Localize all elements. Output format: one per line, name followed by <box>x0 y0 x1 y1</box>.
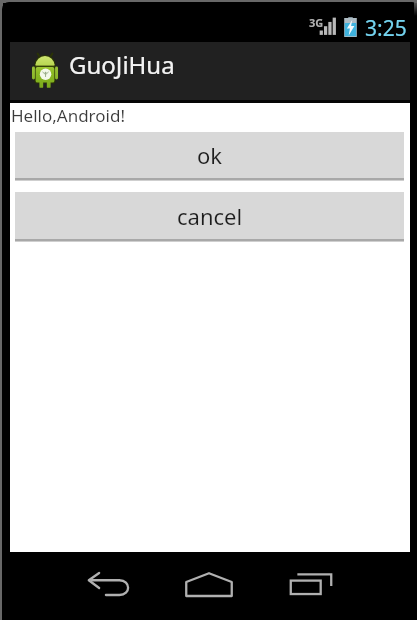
staticText: ok <box>197 140 223 170</box>
staticText: cancel <box>177 201 243 231</box>
staticText: GuoJiHua <box>69 48 175 81</box>
staticText: Hello,Android! <box>11 104 126 127</box>
button[interactable]: ok <box>15 132 404 181</box>
button[interactable]: Home <box>181 566 237 602</box>
button[interactable]: Back <box>81 566 137 602</box>
staticText: 3G <box>309 15 324 30</box>
button[interactable]: Recent apps <box>283 565 339 601</box>
button[interactable]: cancel <box>15 192 404 242</box>
staticText: 3:25 <box>365 14 407 43</box>
